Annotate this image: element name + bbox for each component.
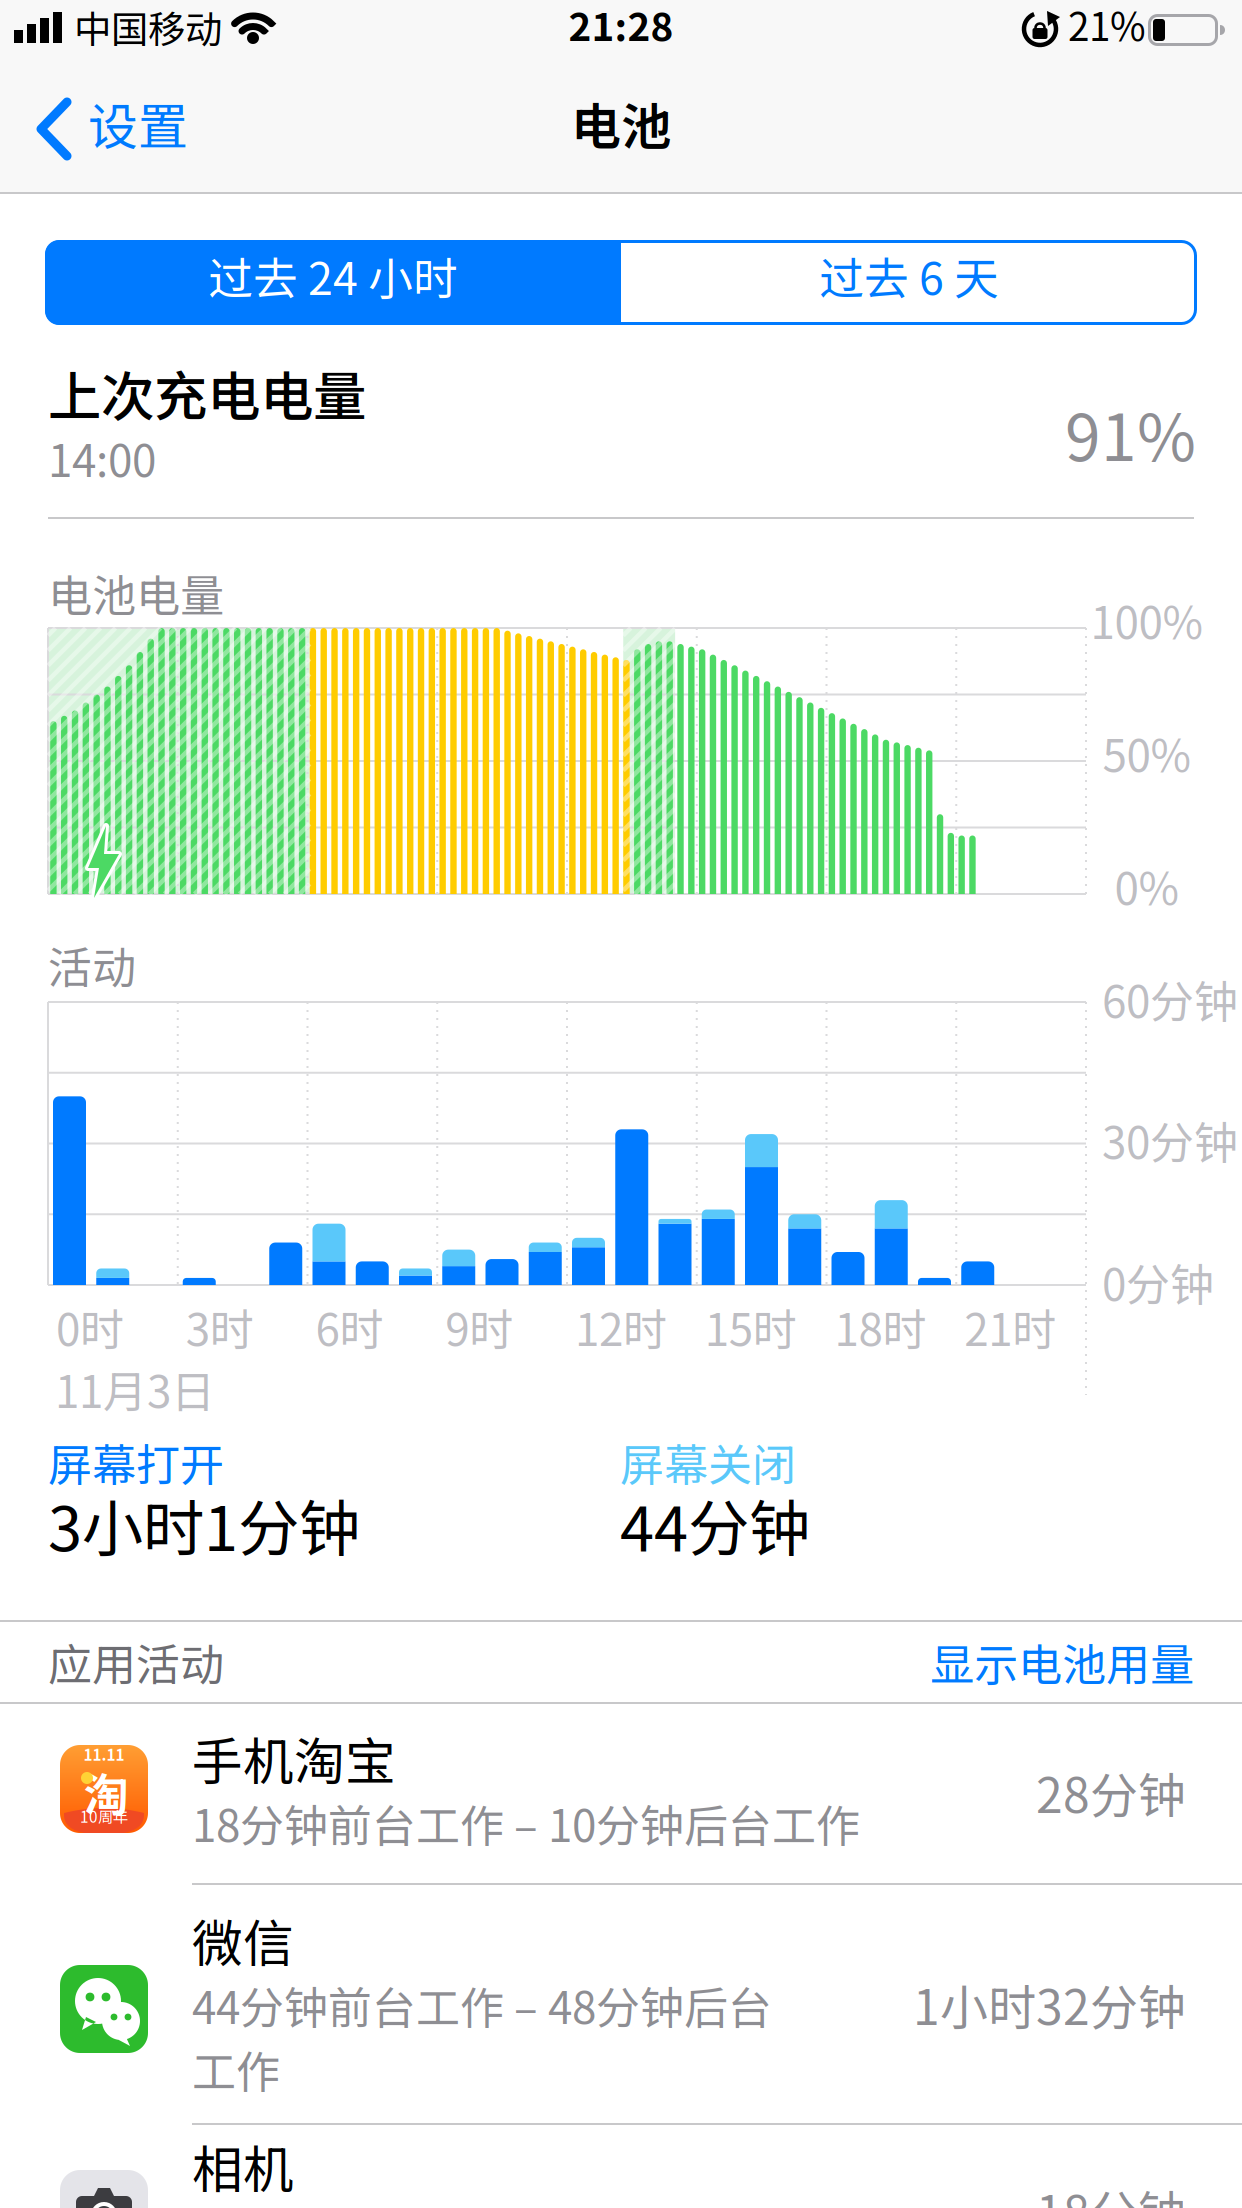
staticText: 30分钟	[1102, 1108, 1238, 1172]
staticText: 过去 24 小时	[208, 243, 458, 308]
staticText: 11.11	[83, 1743, 124, 1765]
staticText: 活动	[48, 933, 136, 997]
staticText: 1小时32分钟	[913, 1969, 1186, 2039]
staticText: 44分钟	[620, 1480, 810, 1569]
staticText: 应用活动	[48, 1630, 224, 1694]
staticText: 电池	[571, 87, 671, 159]
staticText: 微信	[192, 1903, 294, 1977]
staticText: 9时	[445, 1295, 513, 1359]
staticText: 工作	[192, 2037, 280, 2101]
staticText: 3小时1分钟	[48, 1480, 360, 1569]
staticText: 0分钟	[1102, 1250, 1214, 1314]
staticText: 91%	[1065, 387, 1196, 479]
staticText: 18分钟前台工作 – 10分钟后台工作	[192, 1791, 860, 1855]
staticText: 60分钟	[1102, 967, 1238, 1031]
staticText: 21:28	[568, 0, 673, 52]
staticText: 中国移动	[74, 0, 222, 54]
staticText: 21时	[964, 1295, 1056, 1359]
staticText: 11月3日	[55, 1357, 215, 1421]
staticText: 28分钟	[1036, 1757, 1186, 1827]
staticText: 相机	[192, 2129, 294, 2203]
staticText: 100%	[1090, 588, 1203, 652]
staticText: 电池电量	[48, 561, 224, 625]
staticText: 0时	[56, 1295, 124, 1359]
staticText: 0%	[1114, 854, 1179, 918]
staticText: 15时	[705, 1295, 797, 1359]
staticText: 显示电池用量	[930, 1630, 1194, 1694]
staticText: 3时	[186, 1295, 254, 1359]
staticText: 10周年	[80, 1805, 128, 1827]
staticText: 14:00	[48, 426, 156, 490]
staticText: 手机淘宝	[192, 1721, 396, 1795]
staticText: 淘	[83, 1759, 128, 1825]
staticText: 18分钟	[1036, 2175, 1186, 2208]
staticText: 设置	[88, 87, 188, 159]
staticText: 12时	[575, 1295, 667, 1359]
staticText: 屏幕打开	[48, 1430, 224, 1494]
staticText: 上次充电电量	[48, 354, 366, 431]
staticText: 50%	[1102, 721, 1191, 785]
staticText: 21%	[1068, 0, 1146, 52]
staticText: 屏幕关闭	[620, 1430, 796, 1494]
staticText: 44分钟前台工作 – 48分钟后台	[192, 1973, 772, 2037]
staticText: 18时	[834, 1295, 926, 1359]
staticText: 过去 6 天	[819, 243, 999, 308]
staticText: 6时	[315, 1295, 383, 1359]
